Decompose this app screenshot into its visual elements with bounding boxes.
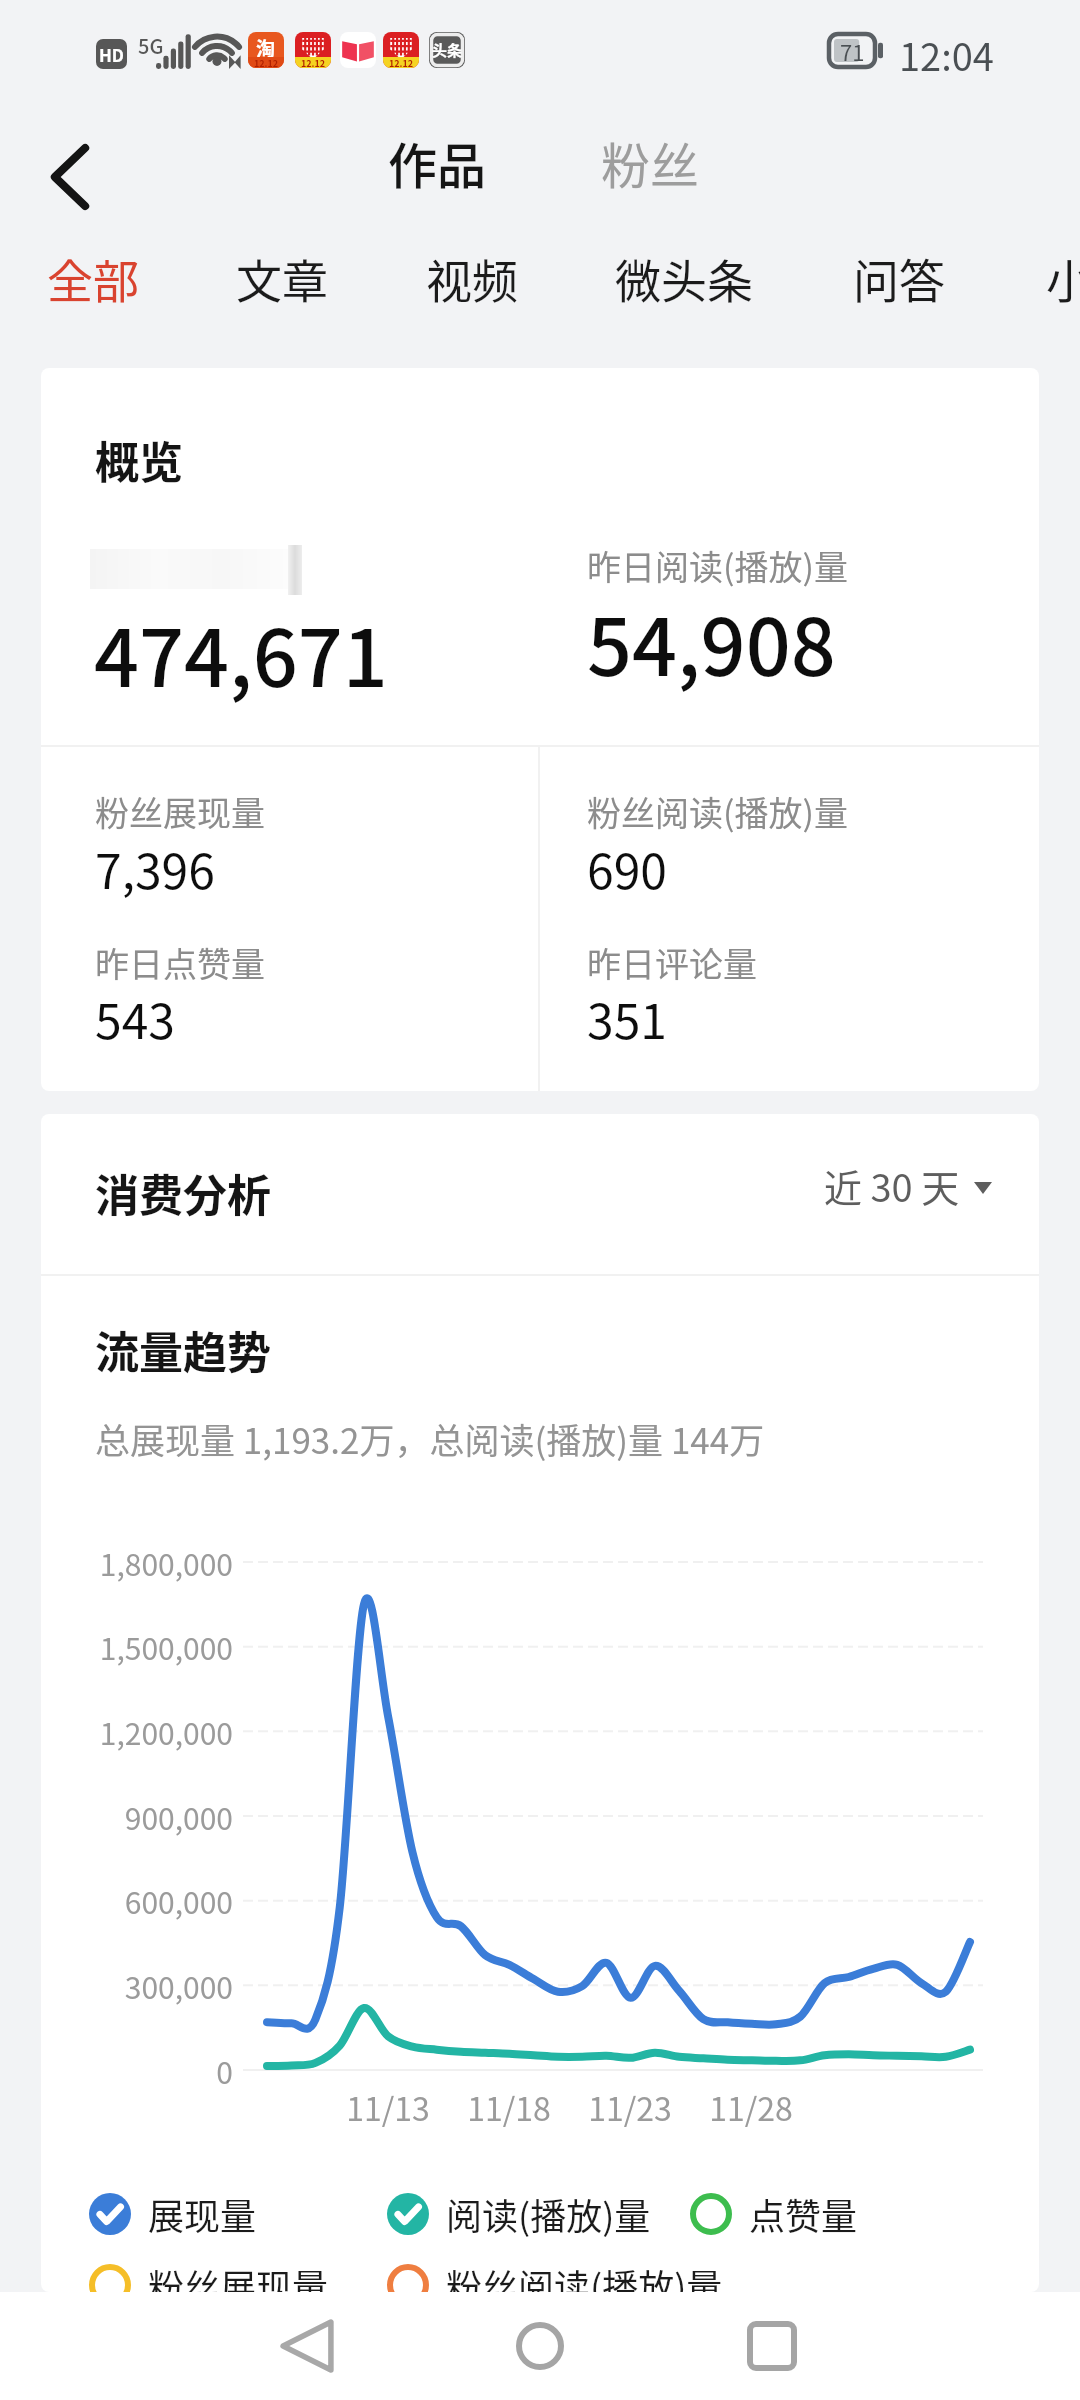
staticText: 12.12: [301, 57, 326, 68]
staticText: 11/28: [691, 2084, 811, 2130]
staticText: 1,200,000: [46, 1710, 233, 1753]
staticText: 消费分析: [95, 1161, 271, 1225]
staticText: 1,500,000: [46, 1625, 233, 1668]
button[interactable]: 点赞量: [690, 2188, 858, 2240]
button[interactable]: 问答: [853, 245, 945, 312]
staticText: 点赞量: [749, 2188, 858, 2240]
staticText: 粉丝阅读(播放)量: [587, 787, 848, 836]
button[interactable]: 展现量: [89, 2188, 257, 2240]
staticText: 粉丝展现量: [148, 2259, 329, 2292]
staticText: 11/23: [570, 2084, 690, 2130]
staticText: 600,000: [46, 1879, 233, 1922]
button[interactable]: 粉丝: [601, 127, 700, 198]
staticText: 11/18: [449, 2084, 569, 2130]
staticText: 小: [1046, 245, 1080, 312]
button[interactable]: Back: [26, 133, 114, 221]
button[interactable]: 作品: [388, 127, 487, 198]
staticText: 粉丝阅读(播放)量: [446, 2259, 723, 2292]
button[interactable]: 阅读(播放)量: [387, 2188, 651, 2240]
staticText: 粉丝展现量: [95, 787, 265, 836]
staticText: 0: [46, 2049, 233, 2092]
staticText: 粉丝: [601, 127, 700, 198]
staticText: HD: [99, 42, 125, 67]
staticText: 概览: [95, 428, 183, 492]
staticText: 1,800,000: [46, 1541, 233, 1584]
button[interactable]: 全部: [47, 245, 139, 312]
button[interactable]: 粉丝展现量: [89, 2259, 329, 2292]
staticText: 543: [95, 983, 175, 1053]
button[interactable]: 微头条: [615, 245, 753, 312]
button[interactable]: 近 30 天: [824, 1158, 992, 1213]
staticText: 900,000: [46, 1795, 233, 1838]
staticText: 71: [840, 35, 865, 67]
staticText: 12.12: [254, 57, 279, 68]
staticText: 12.12: [389, 57, 414, 68]
button[interactable]: 粉丝阅读(播放)量: [387, 2259, 723, 2292]
staticText: 昨日评论量: [587, 938, 757, 987]
staticText: 近 30 天: [824, 1158, 960, 1213]
staticText: 头条: [432, 39, 463, 61]
staticText: 474,671: [94, 595, 388, 709]
staticText: 11/13: [328, 2084, 448, 2130]
staticText: 总展现量 1,193.2万，总阅读(播放)量 144万: [95, 1413, 765, 1464]
button[interactable]: Back: [252, 2292, 362, 2400]
staticText: 昨日阅读(播放)量: [587, 541, 848, 590]
button[interactable]: 小: [1046, 245, 1080, 312]
staticText: 690: [587, 833, 667, 903]
staticText: 流量趋势: [95, 1318, 271, 1382]
button[interactable]: 视频: [426, 245, 518, 312]
button[interactable]: 文章: [236, 245, 328, 312]
staticText: 54,908: [587, 584, 836, 698]
staticText: 全部: [47, 245, 139, 312]
staticText: 微头条: [615, 245, 753, 312]
staticText: 12:04: [899, 27, 994, 82]
staticText: 7,396: [95, 833, 215, 903]
staticText: 昨日点赞量: [95, 938, 265, 987]
button[interactable]: Home: [485, 2292, 595, 2400]
staticText: 300,000: [46, 1964, 233, 2007]
staticText: 351: [587, 983, 667, 1053]
staticText: 问答: [853, 245, 945, 312]
staticText: 淘: [256, 34, 276, 62]
staticText: 阅读(播放)量: [446, 2188, 651, 2240]
staticText: 5G: [138, 31, 164, 60]
button[interactable]: Recents: [717, 2292, 827, 2400]
staticText: 展现量: [148, 2188, 257, 2240]
staticText: 作品: [388, 127, 487, 198]
staticText: 文章: [236, 245, 328, 312]
staticText: 视频: [426, 245, 518, 312]
